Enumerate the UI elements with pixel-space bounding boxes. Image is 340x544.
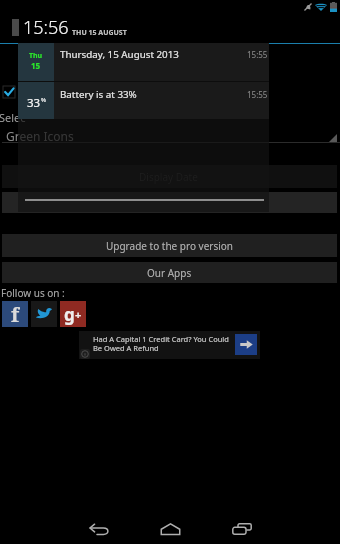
button[interactable]: Thu [18,43,269,81]
button[interactable]: Had A Capital 1 Credit Card? You Could [79,331,260,359]
staticText: g [64,303,75,326]
button[interactable]: Twitter [31,301,57,327]
staticText: 15:55 [247,49,268,60]
staticText: Thu [29,51,43,61]
staticText: 15:56 [23,15,69,40]
staticText: 33 [27,95,41,111]
staticText: + [75,307,82,322]
button[interactable]: Checkbox [3,86,15,98]
button[interactable]: Back [85,515,113,543]
button[interactable]: Google Plus [60,301,86,327]
staticText: THU 15 AUGUST [72,28,127,38]
staticText: Battery is at 33% [60,88,137,101]
staticText: Our Apps [147,266,192,280]
button[interactable]: Recent apps [228,515,256,543]
staticText: 15:55 [247,89,268,100]
button[interactable]: Home [156,515,184,543]
staticText: % [41,96,46,104]
staticText: Selec [0,110,26,125]
button[interactable]: Our Apps [2,262,337,283]
staticText: f [11,301,20,327]
staticText: Had A Capital 1 Credit Card? You Could [93,334,229,344]
button[interactable] [2,192,337,213]
staticText: Upgrade to the pro version [106,239,234,253]
staticText: Thursday, 15 August 2013 [60,48,179,61]
staticText: 15 [31,60,41,71]
staticText: Green Icons [6,128,74,144]
staticText: Be Owed A Refund [93,343,159,353]
button[interactable]: 33 [18,82,269,119]
staticText: Follow us on : [1,286,65,300]
button[interactable]: Upgrade to the pro version [2,234,337,257]
button[interactable]: Facebook [2,301,28,327]
